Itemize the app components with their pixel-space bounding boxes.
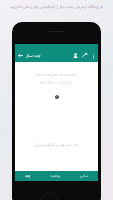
button[interactable]: More options — [89, 52, 97, 60]
staticText: 윤이 두고 나 었나요? — [40, 80, 73, 85]
button[interactable]: Back — [17, 52, 24, 59]
staticText: فروشگاه اینترنتی چت ساز | اپلیکیشن پیام … — [0, 4, 113, 9]
button[interactable]: Profile — [71, 51, 80, 60]
button[interactable]: Statistics — [80, 51, 89, 60]
staticText: چت ساز — [26, 53, 41, 59]
button[interactable]: چت — [25, 174, 31, 178]
button[interactable]: وضعیت — [50, 174, 61, 178]
staticText: haim hae just so ooraya? — [36, 72, 77, 77]
button[interactable]: تماس — [80, 174, 89, 178]
staticText: چت ساز بهترین اپلیکیشن پیام — [35, 142, 79, 147]
